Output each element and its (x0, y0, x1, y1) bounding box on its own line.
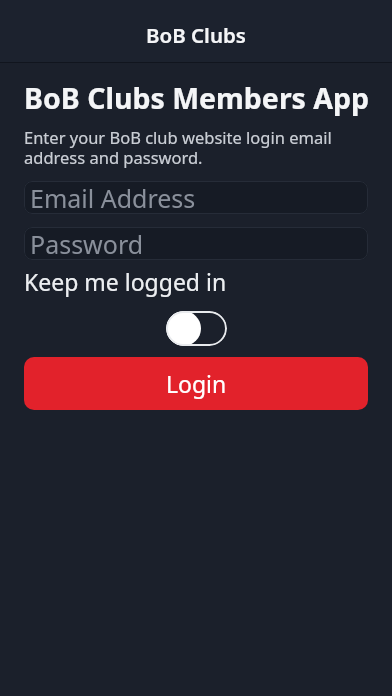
staticText: Keep me logged in (24, 266, 227, 297)
button[interactable] (166, 311, 227, 346)
staticText: Password (30, 227, 144, 260)
staticText: Enter your BoB club website login email … (24, 126, 332, 169)
staticText: Email Address (30, 181, 196, 214)
staticText: BoB Clubs Members App (24, 79, 368, 118)
staticText: BoB Clubs (146, 21, 246, 49)
button[interactable]: Email Address (24, 181, 368, 214)
button[interactable]: Password (24, 227, 368, 260)
button[interactable]: Login (24, 357, 368, 410)
staticText: Login (166, 368, 227, 399)
